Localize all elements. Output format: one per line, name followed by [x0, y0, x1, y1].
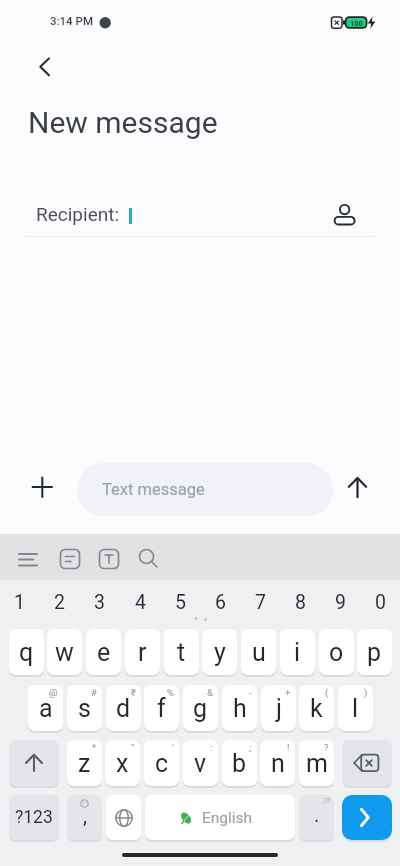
button[interactable]: 3 — [80, 580, 118, 624]
button[interactable] — [106, 795, 141, 840]
button[interactable]: k — [299, 685, 334, 731]
staticText: u — [252, 638, 266, 667]
button[interactable]: v — [183, 740, 218, 786]
button[interactable] — [9, 740, 59, 786]
staticText: English — [202, 809, 253, 827]
button[interactable] — [133, 544, 163, 574]
staticText: 4 — [135, 591, 146, 614]
staticText: % — [167, 687, 174, 698]
staticText: ,!? — [323, 797, 330, 805]
button[interactable]: s — [67, 685, 102, 731]
button[interactable]: . — [299, 795, 334, 840]
button[interactable]: c — [144, 740, 179, 786]
staticText: r — [138, 638, 147, 667]
staticText: y — [214, 638, 226, 667]
staticText: " — [131, 742, 135, 753]
button[interactable]: English — [145, 795, 295, 840]
button[interactable] — [55, 544, 85, 574]
staticText: o — [329, 638, 344, 667]
staticText: m — [306, 749, 328, 778]
button[interactable] — [330, 198, 359, 228]
button[interactable]: b — [222, 740, 257, 786]
button[interactable]: g — [183, 685, 218, 731]
staticText: c — [155, 749, 169, 778]
staticText: h — [233, 694, 247, 723]
button[interactable]: r — [125, 629, 160, 675]
button[interactable]: o — [319, 629, 354, 675]
staticText: g — [193, 694, 208, 723]
staticText: z — [78, 749, 91, 778]
button[interactable]: 1 — [0, 580, 38, 624]
button[interactable] — [342, 795, 392, 840]
staticText: Text message — [102, 480, 205, 499]
button[interactable]: y — [202, 629, 237, 675]
staticText: - — [249, 687, 252, 698]
staticText: , — [83, 804, 87, 827]
button[interactable]: 9 — [321, 580, 359, 624]
button[interactable]: 2 — [40, 580, 78, 624]
staticText: ; — [249, 742, 252, 753]
staticText: 100 — [350, 19, 363, 28]
button[interactable]: d — [106, 685, 141, 731]
button[interactable]: t — [164, 629, 199, 675]
staticText: i — [294, 638, 301, 667]
staticText: b — [232, 749, 247, 778]
staticText: 6 — [215, 591, 226, 614]
button[interactable]: z — [67, 740, 102, 786]
staticText: 0 — [375, 591, 386, 614]
button[interactable]: ?123 — [9, 795, 59, 840]
button[interactable] — [26, 52, 62, 84]
button[interactable] — [340, 469, 376, 505]
button[interactable]: p — [357, 629, 392, 675]
button[interactable] — [13, 544, 43, 574]
staticText: ? — [324, 742, 329, 753]
button[interactable]: e — [86, 629, 121, 675]
staticText: p — [367, 638, 382, 667]
staticText: 7 — [255, 591, 266, 614]
button[interactable]: 0 — [361, 580, 399, 624]
button[interactable] — [342, 740, 392, 786]
staticText: # — [91, 687, 97, 698]
staticText: ) — [364, 687, 368, 698]
button[interactable]: u — [241, 629, 276, 675]
button[interactable]: j — [261, 685, 296, 731]
staticText: w — [55, 638, 74, 667]
staticText: : — [210, 742, 213, 753]
button[interactable]: l — [338, 685, 373, 731]
button[interactable]: i — [280, 629, 315, 675]
button[interactable]: Text message — [77, 463, 333, 516]
button[interactable]: 8 — [281, 580, 319, 624]
staticText: v — [194, 749, 207, 778]
button[interactable] — [94, 544, 124, 574]
staticText: q — [19, 638, 34, 667]
button[interactable]: a — [28, 685, 63, 731]
button[interactable]: w — [47, 629, 82, 675]
button[interactable]: x — [105, 740, 140, 786]
button[interactable]: m — [299, 740, 334, 786]
button[interactable]: n — [260, 740, 295, 786]
staticText: s — [78, 694, 91, 723]
button[interactable]: 5 — [161, 580, 199, 624]
staticText: 5 — [175, 591, 186, 614]
button[interactable]: 4 — [121, 580, 159, 624]
button[interactable]: , — [67, 795, 102, 840]
button[interactable]: f — [144, 685, 179, 731]
staticText: ! — [287, 742, 290, 753]
staticText: New message — [28, 105, 218, 140]
button[interactable]: q — [9, 629, 44, 675]
staticText: . — [314, 803, 320, 826]
staticText: ₹ — [131, 687, 136, 698]
button[interactable]: 7 — [241, 580, 279, 624]
staticText: @ — [49, 687, 58, 698]
button[interactable]: 6 — [201, 580, 239, 624]
staticText: ( — [325, 687, 329, 698]
staticText: j — [276, 694, 282, 723]
button[interactable]: h — [222, 685, 257, 731]
button[interactable] — [24, 469, 61, 505]
staticText: ?123 — [15, 807, 53, 828]
staticText: x — [116, 749, 129, 778]
staticText: + — [285, 687, 291, 698]
staticText: * — [92, 742, 97, 753]
staticText: 8 — [295, 591, 306, 614]
staticText: a — [39, 694, 53, 723]
